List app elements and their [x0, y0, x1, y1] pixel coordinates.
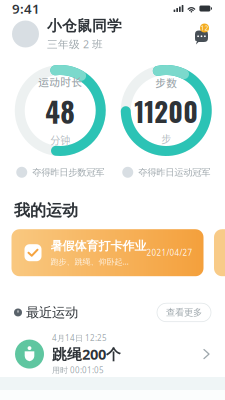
staticText: 小仓鼠同学 — [47, 17, 122, 35]
staticText: 4月14日 12:25 — [52, 333, 107, 343]
staticText: 运动时长 — [38, 74, 82, 89]
staticText: 暑假体育打卡作业 — [50, 238, 146, 253]
staticText: 步数 — [155, 75, 177, 90]
button[interactable]: 暑假体育打卡作业 — [11, 229, 203, 276]
button[interactable]: Messages — [191, 23, 225, 45]
staticText: 查看更多 — [166, 307, 202, 318]
staticText: 12 — [200, 24, 208, 32]
staticText: 步 — [161, 132, 171, 146]
staticText: 夺得昨日运动冠军 — [138, 166, 210, 178]
button[interactable]: 查看更多 — [157, 303, 225, 322]
staticText: 夺得昨日步数冠军 — [32, 166, 104, 178]
staticText: 分钟 — [50, 133, 70, 147]
staticText: 最近运动 — [26, 304, 78, 321]
staticText: 跳绳200个 — [52, 344, 121, 364]
staticText: 2021/04/27 — [146, 247, 192, 258]
staticText: 用时 00:01:05 — [52, 365, 104, 375]
staticText: 9:41 — [12, 0, 40, 17]
button[interactable]: 4月14日 12:25 — [0, 322, 225, 389]
staticText: 三年级 2 班 — [47, 37, 103, 51]
staticText: 我的运动 — [14, 201, 78, 220]
staticText: 跑步、跳绳、仰卧起… — [50, 256, 128, 267]
staticText: 48 — [45, 90, 75, 132]
staticText: 11200 — [134, 91, 198, 131]
